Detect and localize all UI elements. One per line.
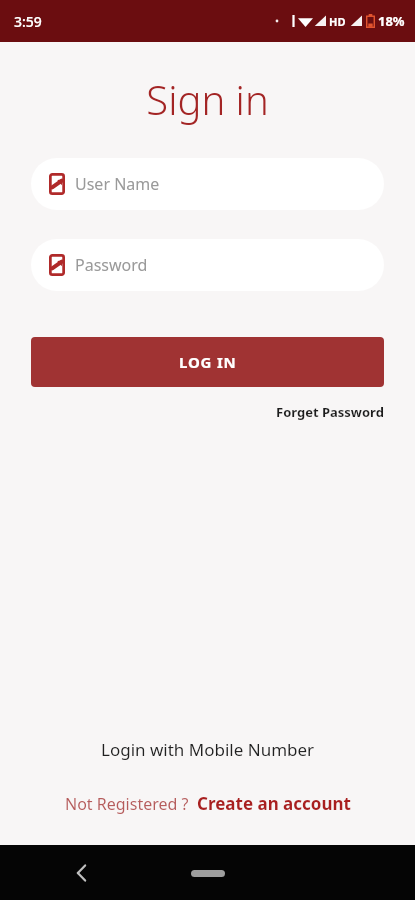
staticText: HD [329,14,346,29]
button[interactable]: User Name [31,158,384,210]
staticText: Sign in [146,72,269,126]
button[interactable]: Create an account [197,792,351,815]
staticText: LOG IN [179,352,237,372]
staticText: 18% [378,12,405,30]
staticText: Create an account [197,792,351,815]
staticText: Login with Mobile Number [101,738,315,761]
button[interactable]: LOG IN [31,337,384,387]
button[interactable]: Login with Mobile Number [89,734,327,765]
button[interactable]: Home [181,858,235,888]
staticText: Not Registered ? [65,793,189,815]
staticText: Forget Password [276,403,384,421]
button[interactable]: Not Registered ? [65,793,189,815]
staticText: User Name [75,173,160,195]
button[interactable]: Password [31,239,384,291]
button[interactable]: Forget Password [276,403,384,421]
button[interactable]: Back [60,852,102,894]
staticText: 3:59 [14,12,42,31]
staticText: Password [75,254,148,276]
